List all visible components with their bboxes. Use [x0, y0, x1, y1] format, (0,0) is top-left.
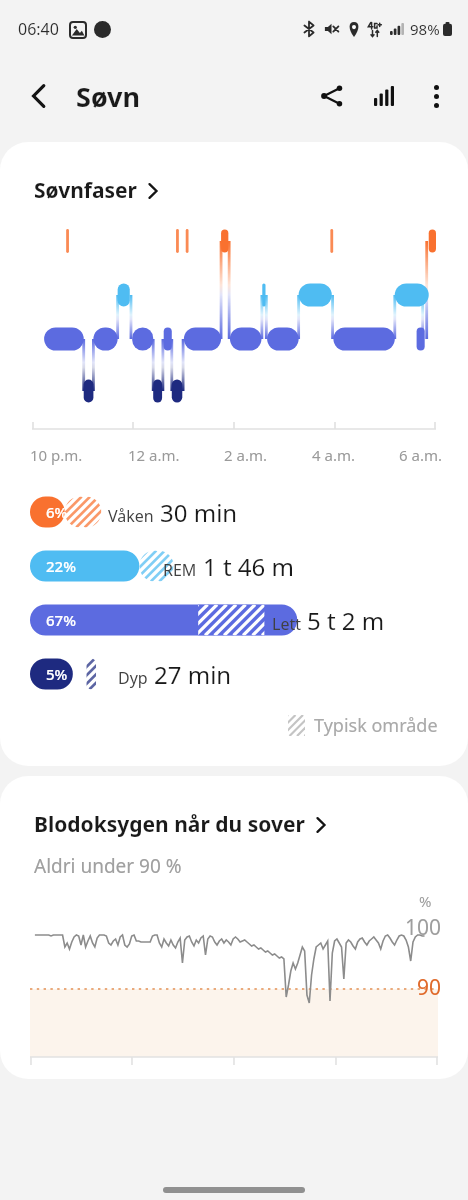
- staticText: Lett: [272, 613, 301, 635]
- staticText: 10 p.m.: [30, 445, 83, 465]
- staticText: Blodoksygen når du sover: [34, 810, 305, 839]
- button[interactable]: 6%: [0, 495, 468, 529]
- staticText: Våken: [108, 505, 154, 527]
- staticText: Dyp: [118, 667, 148, 689]
- button[interactable]: Søvnfaser: [34, 176, 158, 205]
- staticText: 4 a.m.: [312, 445, 355, 465]
- staticText: 5%: [46, 664, 68, 684]
- button[interactable]: Share: [306, 70, 358, 122]
- staticText: 6%: [46, 502, 68, 522]
- button[interactable]: Back: [14, 71, 64, 121]
- button[interactable]: 5%: [0, 657, 468, 691]
- staticText: 06:40: [18, 18, 59, 40]
- staticText: 98%: [410, 19, 440, 39]
- staticText: Typisk område: [314, 713, 438, 738]
- staticText: 30 min: [160, 496, 238, 529]
- staticText: 22%: [46, 556, 76, 576]
- staticText: 12 a.m.: [128, 445, 180, 465]
- button[interactable]: 67%: [0, 603, 468, 637]
- staticText: Aldri under 90 %: [34, 853, 182, 879]
- staticText: 90: [417, 973, 442, 1002]
- staticText: REM: [163, 559, 197, 581]
- staticText: 100: [405, 913, 442, 942]
- button[interactable]: Blodoksygen når du sover: [34, 810, 326, 839]
- staticText: 2 a.m.: [224, 445, 267, 465]
- staticText: 1 t 46 m: [203, 550, 295, 583]
- staticText: Søvn: [76, 78, 141, 115]
- staticText: 6 a.m.: [399, 445, 442, 465]
- button[interactable]: Statistics: [358, 70, 410, 122]
- staticText: 67%: [46, 610, 76, 630]
- staticText: %: [419, 891, 432, 911]
- staticText: 27 min: [154, 658, 232, 691]
- button[interactable]: More options: [410, 70, 462, 122]
- staticText: Søvnfaser: [34, 176, 137, 205]
- button[interactable]: 22%: [0, 549, 468, 583]
- staticText: 5 t 2 m: [307, 604, 385, 637]
